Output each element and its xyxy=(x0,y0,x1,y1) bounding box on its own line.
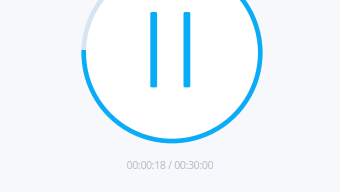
button[interactable]: Pause xyxy=(81,0,263,143)
staticText: 00:00:18 / 00:30:00 xyxy=(127,158,213,172)
